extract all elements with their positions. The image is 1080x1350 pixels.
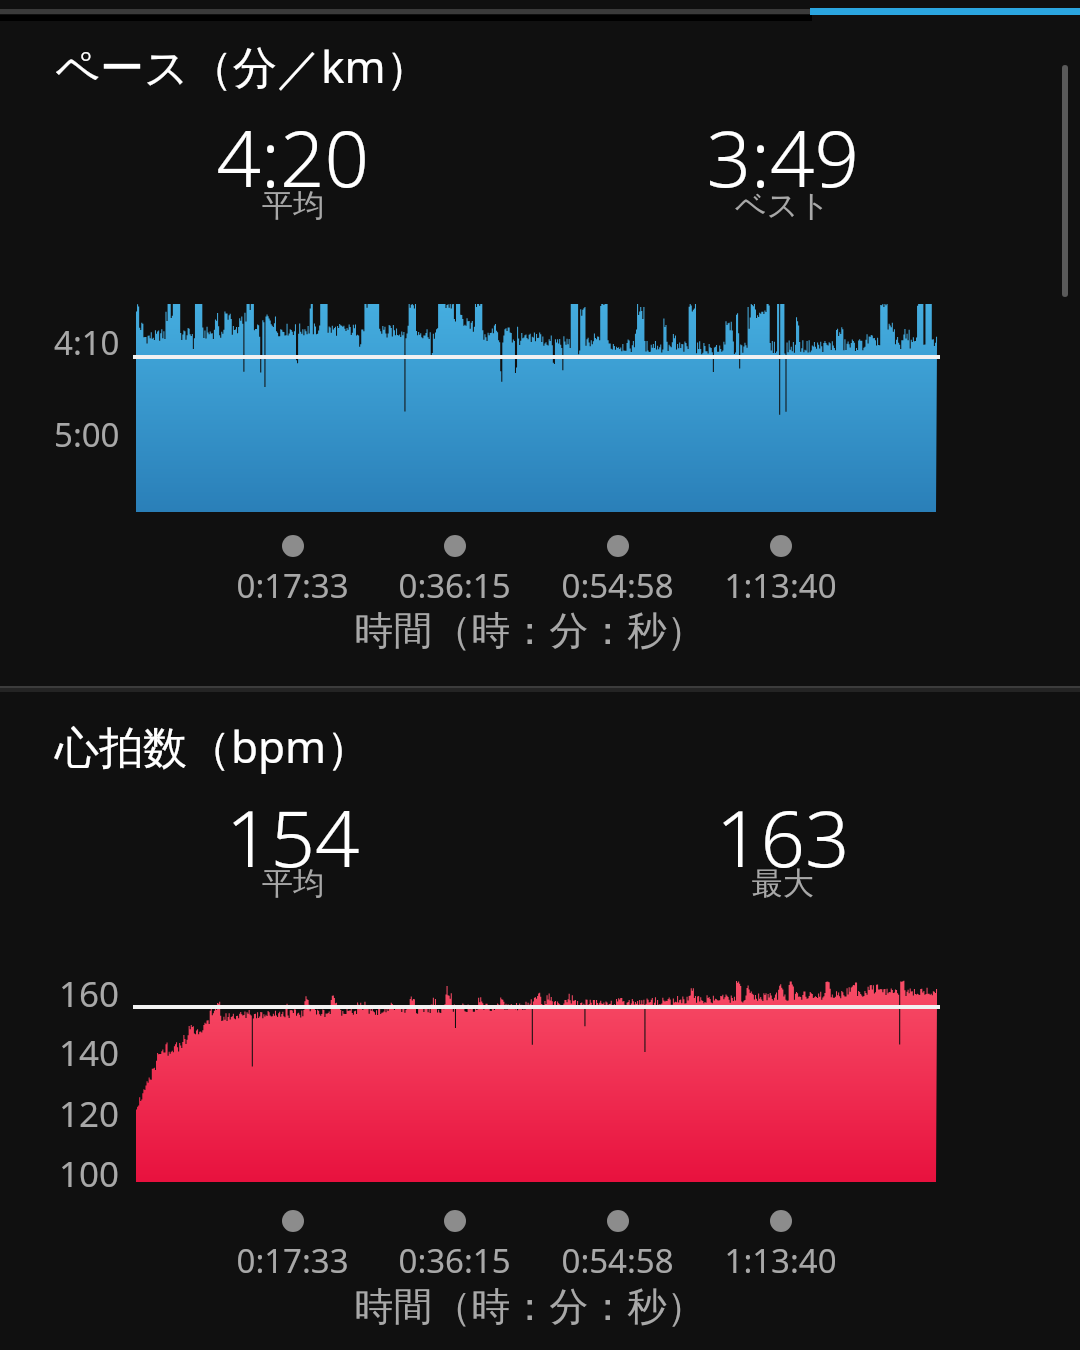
button[interactable]: Workout pace and heart rate charts [0,0,1080,1350]
